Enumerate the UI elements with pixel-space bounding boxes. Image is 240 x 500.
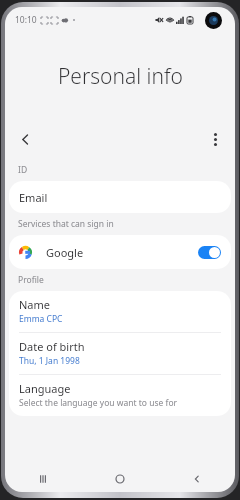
staticText: Profile: [18, 274, 44, 286]
button[interactable]: Back: [158, 466, 235, 492]
button[interactable]: Date of birth: [9, 333, 231, 374]
staticText: Google: [46, 245, 84, 260]
button[interactable]: Google sign-in toggle, on: [198, 246, 221, 259]
staticText: Thu, 1 Jan 1998: [19, 355, 80, 367]
button[interactable]: Back: [9, 123, 41, 155]
staticText: Select the language you want to use for: [19, 397, 178, 409]
staticText: ID: [18, 164, 28, 176]
staticText: Name: [19, 297, 51, 312]
staticText: 10:10: [15, 14, 37, 26]
staticText: Language: [19, 381, 71, 396]
button[interactable]: Name: [9, 291, 231, 332]
staticText: Emma CPC: [19, 313, 63, 325]
staticText: Email: [19, 190, 48, 205]
button[interactable]: Home: [81, 466, 158, 492]
button[interactable]: Recents: [5, 466, 81, 492]
button[interactable]: More options: [199, 123, 231, 155]
staticText: Services that can sign in: [18, 218, 114, 230]
button[interactable]: Email: [9, 181, 231, 213]
staticText: Date of birth: [19, 339, 85, 354]
button[interactable]: Google: [9, 235, 231, 269]
staticText: Personal info: [58, 62, 183, 91]
button[interactable]: Language: [9, 375, 231, 416]
